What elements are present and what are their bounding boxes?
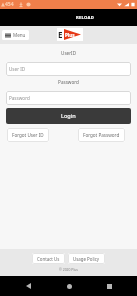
- staticText: Contact Us: [37, 256, 60, 262]
- staticText: Login: [61, 112, 76, 120]
- staticText: Forgot Password: [83, 132, 120, 138]
- button[interactable]: Menu: [2, 30, 29, 40]
- staticText: Forgot User ID: [12, 132, 44, 138]
- button[interactable]: Usage Policy: [68, 253, 105, 264]
- button[interactable]: Back: [16, 276, 40, 296]
- button[interactable]: Recent apps: [97, 276, 121, 296]
- staticText: RELOAD: [76, 15, 95, 21]
- staticText: 454: [5, 1, 14, 8]
- staticText: E: [58, 29, 63, 40]
- button[interactable]: Home: [57, 276, 81, 296]
- staticText: Plus: [65, 32, 75, 38]
- staticText: Usage Policy: [73, 256, 100, 262]
- staticText: UserID: [0, 50, 137, 56]
- staticText: Password: [9, 95, 30, 101]
- staticText: Menu: [13, 32, 26, 38]
- staticText: Password: [0, 79, 137, 85]
- staticText: © 2020 Plus: [59, 267, 78, 272]
- button[interactable]: Login: [6, 108, 131, 124]
- button[interactable]: Password: [6, 91, 131, 105]
- button[interactable]: Contact Us: [32, 253, 65, 264]
- staticText: User ID: [9, 66, 26, 72]
- button[interactable]: Forgot User ID: [7, 128, 49, 142]
- button[interactable]: Forgot Password: [78, 128, 125, 142]
- button[interactable]: User ID: [6, 62, 131, 76]
